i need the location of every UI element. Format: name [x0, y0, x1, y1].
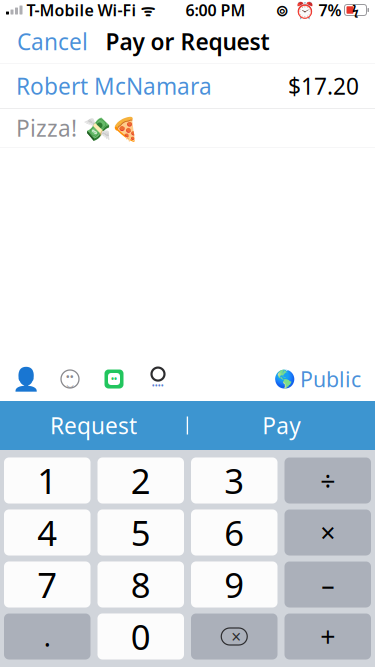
staticText: 6 — [224, 509, 244, 555]
button[interactable]: 0 — [97, 613, 184, 659]
button[interactable]: 8 — [97, 561, 184, 607]
staticText: •• — [66, 370, 74, 383]
button[interactable]: × — [284, 509, 371, 555]
button[interactable]: Robert McNamara — [0, 63, 375, 108]
staticText: 4 — [37, 509, 57, 555]
button[interactable]: 3 — [191, 457, 277, 503]
staticText: ⊚ ⏰ 7% — [275, 0, 341, 21]
staticText: ᯤ — [136, 0, 155, 21]
button[interactable]: Emoji — [48, 361, 92, 397]
button[interactable]: – — [284, 561, 371, 607]
button[interactable]: 5 — [97, 509, 184, 555]
staticText: . — [44, 619, 51, 654]
staticText: ÷ — [320, 463, 335, 498]
button[interactable]: Cancel — [0, 18, 105, 64]
staticText: •• — [111, 374, 117, 384]
staticText: ϟ — [352, 2, 359, 18]
staticText: ‿ — [66, 372, 73, 388]
staticText: Pizza! 💸🍕 — [16, 113, 139, 143]
button[interactable]: 6 — [191, 509, 277, 555]
button[interactable]: 4 — [4, 509, 90, 555]
staticText: × — [320, 515, 335, 550]
button[interactable]: GIF — [136, 361, 180, 397]
staticText: Public — [300, 365, 361, 393]
staticText: 7 — [37, 561, 57, 607]
staticText: × — [231, 625, 241, 648]
button[interactable]: Add person — [4, 361, 48, 397]
staticText: 2 — [131, 457, 151, 503]
staticText: T-Mobile Wi-Fi — [22, 0, 136, 21]
staticText: 3 — [224, 457, 244, 503]
button[interactable]: 7 — [4, 561, 90, 607]
staticText: – — [321, 567, 334, 602]
staticText: 1 — [37, 457, 57, 503]
staticText: Pay — [262, 410, 301, 440]
button[interactable]: + — [284, 613, 371, 659]
staticText: Request — [50, 410, 137, 440]
button[interactable]: Delete — [191, 613, 277, 659]
staticText: Pay or Request — [105, 26, 269, 56]
staticText: 8 — [131, 561, 151, 607]
button[interactable]: Pay — [188, 401, 375, 450]
staticText: 6:00 PM — [185, 0, 245, 21]
staticText: •••• — [152, 382, 164, 390]
button[interactable]: Bitmoji — [92, 361, 136, 397]
staticText: 👤 — [12, 366, 40, 392]
staticText: 5 — [131, 509, 151, 555]
button[interactable]: Request — [0, 401, 187, 450]
staticText: $17.20 — [288, 71, 359, 101]
staticText: Robert McNamara — [16, 71, 212, 101]
staticText: + — [320, 619, 335, 654]
button[interactable]: 🌎 — [260, 361, 375, 397]
button[interactable]: . — [4, 613, 90, 659]
staticText: 🌎 — [274, 369, 296, 389]
button[interactable]: 2 — [97, 457, 184, 503]
staticText: Cancel — [17, 26, 88, 56]
button[interactable]: 9 — [191, 561, 277, 607]
button[interactable]: 1 — [4, 457, 90, 503]
staticText: 0 — [131, 613, 151, 659]
button[interactable]: ÷ — [284, 457, 371, 503]
button[interactable]: Pizza! 💸🍕 — [0, 109, 375, 147]
staticText: 9 — [224, 561, 244, 607]
